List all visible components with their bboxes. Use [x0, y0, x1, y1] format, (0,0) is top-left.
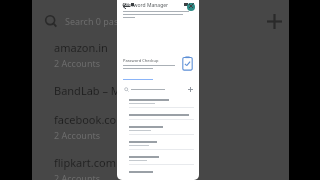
button[interactable]: Search	[36, 10, 256, 32]
staticText: Password Manager	[123, 2, 169, 9]
staticText: amazon.in	[54, 40, 108, 55]
staticText: 2 Accounts	[54, 57, 101, 69]
button[interactable]	[117, 153, 199, 168]
staticText: 4:03	[122, 2, 129, 7]
other: Search	[44, 14, 58, 28]
button[interactable]: Search	[122, 85, 184, 93]
button[interactable]: BandLab – M	[54, 79, 174, 108]
button[interactable]: Add password	[261, 8, 287, 34]
button[interactable]	[117, 138, 199, 153]
button[interactable]	[117, 168, 199, 179]
button[interactable]: Back	[121, 1, 132, 12]
other: Search	[124, 87, 129, 92]
staticText: BandLab – M	[54, 83, 121, 98]
button[interactable]: Password Checkup	[117, 52, 199, 74]
staticText: 2 Accounts	[54, 129, 101, 141]
button[interactable]	[117, 111, 199, 123]
staticText: Search 0 pas	[65, 15, 119, 27]
button[interactable]: Account	[187, 3, 195, 11]
button[interactable]: Add password	[186, 85, 194, 93]
staticText: 2 Accounts	[54, 172, 101, 180]
staticText: Password Checkup	[123, 58, 159, 63]
button[interactable]: facebook.com	[54, 108, 174, 151]
button[interactable]: amazon.in	[54, 36, 174, 79]
button[interactable]: flipkart.com	[54, 151, 174, 180]
button[interactable]	[117, 123, 199, 138]
other: Password Checkup	[181, 56, 194, 71]
staticText: flipkart.com	[54, 155, 116, 170]
button[interactable]	[117, 96, 199, 111]
button[interactable]: Close	[187, 2, 194, 9]
staticText: facebook.com	[54, 112, 127, 127]
